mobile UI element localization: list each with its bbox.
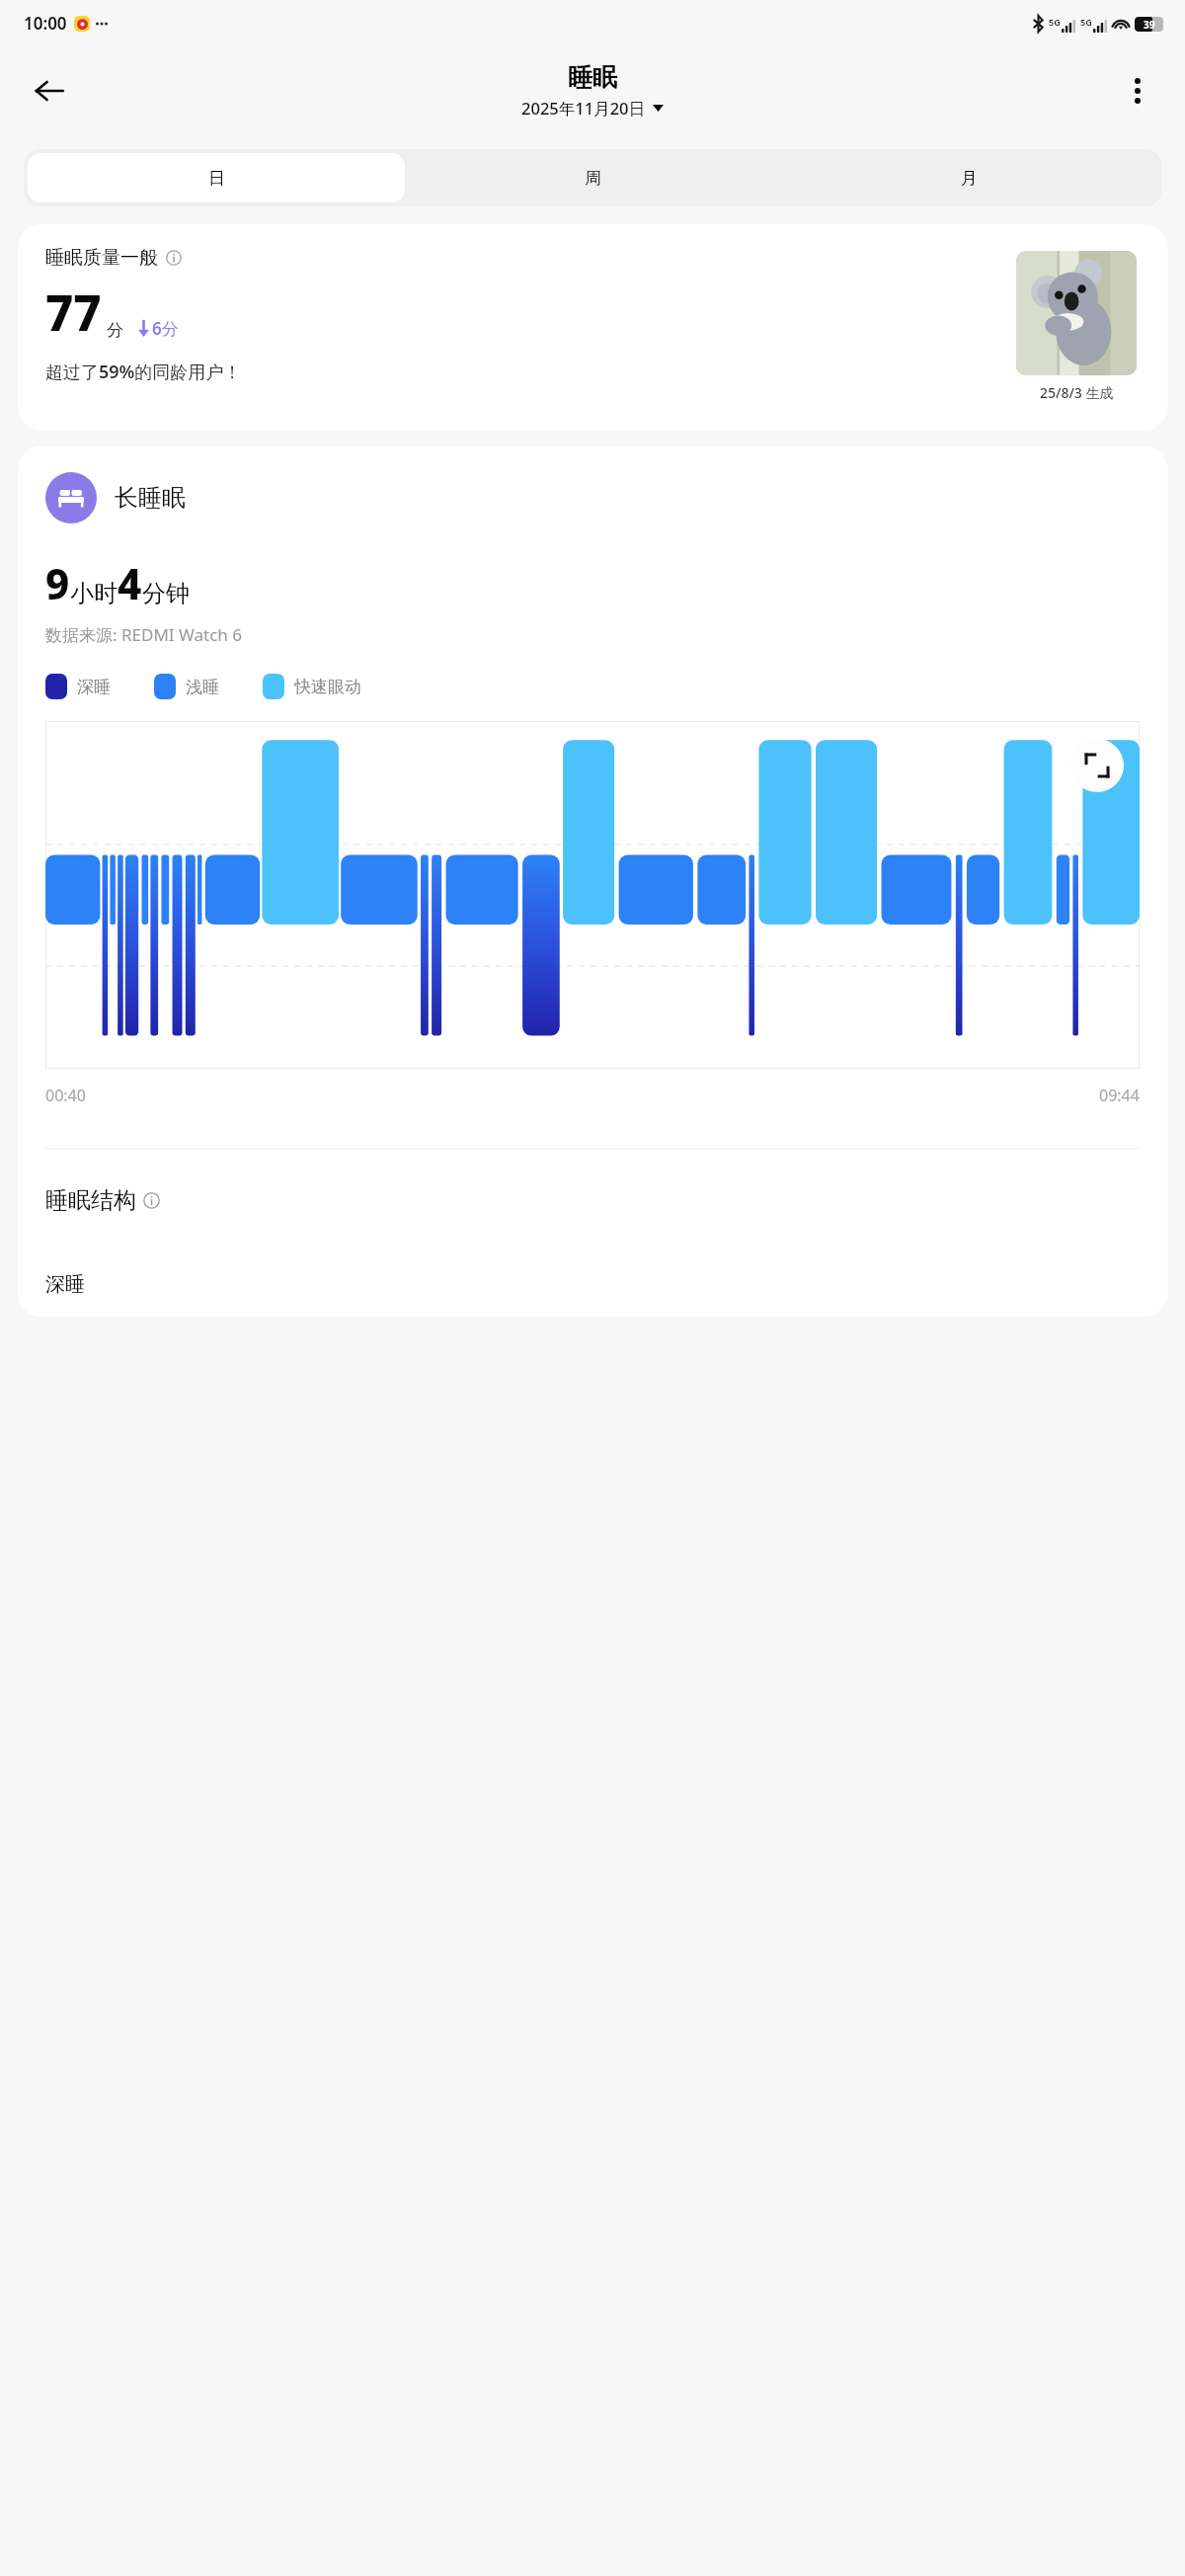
staticText: 浅睡: [186, 677, 219, 697]
button[interactable]: Expand chart: [1070, 739, 1124, 792]
button[interactable]: More options: [1112, 65, 1163, 117]
staticText: 6分: [152, 317, 179, 340]
staticText: 09:44: [1099, 1085, 1140, 1106]
staticText: 39: [1144, 18, 1155, 32]
staticText: 4: [118, 555, 142, 611]
staticText: 深睡: [45, 1272, 85, 1297]
staticText: 长睡眠: [115, 483, 186, 513]
staticText: 分钟: [142, 579, 190, 608]
button[interactable]: 周: [405, 153, 781, 202]
button[interactable]: 月: [781, 153, 1157, 202]
button[interactable]: 2025年11月20日: [521, 97, 664, 120]
staticText: 睡眠: [568, 62, 617, 93]
staticText: 睡眠结构: [45, 1186, 136, 1215]
staticText: 月: [961, 168, 978, 189]
staticText: 77: [45, 280, 102, 346]
button[interactable]: Back: [22, 63, 77, 119]
staticText: 25/8/3 生成: [1040, 383, 1114, 402]
staticText: 2025年11月20日: [521, 97, 646, 120]
staticText: 深睡: [77, 677, 111, 697]
button[interactable]: 睡眠质量一般: [18, 224, 1167, 431]
staticText: 数据来源: REDMI Watch 6: [45, 623, 242, 646]
button[interactable]: 日: [28, 153, 405, 202]
staticText: 日: [208, 168, 225, 189]
staticText: 小时: [70, 579, 118, 608]
staticText: 周: [585, 168, 601, 189]
staticText: 睡眠质量一般: [45, 246, 158, 270]
staticText: 10:00: [24, 12, 67, 35]
staticText: 超过了59%的同龄用户！: [45, 360, 242, 384]
staticText: 9: [45, 555, 70, 611]
staticText: 分: [107, 320, 123, 341]
staticText: 5G: [1049, 16, 1061, 28]
button[interactable]: 25/8/3 生成: [1003, 246, 1149, 407]
staticText: 快速眼动: [294, 677, 361, 697]
staticText: 00:40: [45, 1085, 86, 1106]
staticText: 5G: [1080, 16, 1092, 28]
